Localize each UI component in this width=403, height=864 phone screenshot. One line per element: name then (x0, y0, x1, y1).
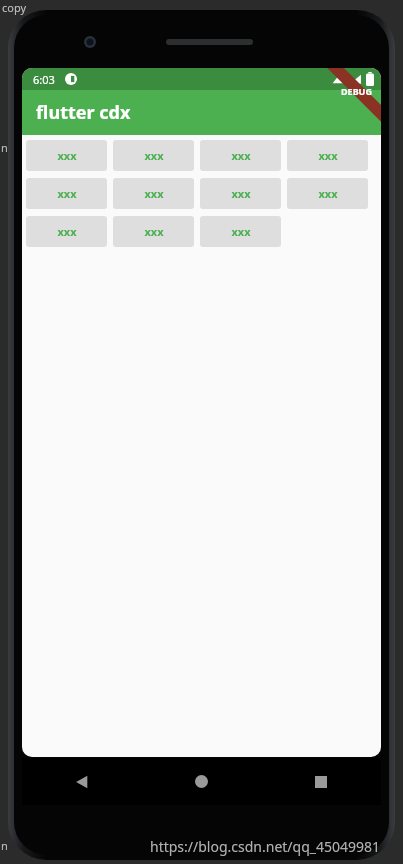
staticText: xxx (144, 224, 164, 239)
button[interactable]: xxx (287, 140, 368, 171)
staticText: n (1, 838, 8, 853)
staticText: flutter cdx (36, 100, 131, 125)
button[interactable]: Recent apps (261, 758, 381, 805)
staticText: xxx (57, 224, 77, 239)
staticText: xxx (144, 148, 164, 163)
staticText: xxx (231, 148, 251, 163)
button[interactable]: Home (141, 758, 261, 805)
button[interactable]: xxx (26, 140, 107, 171)
staticText: n (1, 140, 8, 155)
staticText: xxx (318, 148, 338, 163)
button[interactable]: xxx (113, 178, 194, 209)
button[interactable]: xxx (200, 216, 281, 247)
button[interactable]: xxx (26, 216, 107, 247)
staticText: xxx (231, 186, 251, 201)
button[interactable]: xxx (200, 178, 281, 209)
button[interactable]: Back (22, 758, 141, 805)
staticText: xxx (57, 186, 77, 201)
button[interactable]: xxx (113, 216, 194, 247)
staticText: xxx (231, 224, 251, 239)
staticText: xxx (57, 148, 77, 163)
staticText: copy (2, 0, 27, 15)
staticText: DEBUG (341, 85, 372, 97)
staticText: https://blog.csdn.net/qq_45049981 (150, 837, 381, 856)
button[interactable]: xxx (26, 178, 107, 209)
button[interactable]: xxx (287, 178, 368, 209)
button[interactable]: xxx (200, 140, 281, 171)
staticText: 6:03 (33, 72, 55, 87)
staticText: xxx (318, 186, 338, 201)
button[interactable]: xxx (113, 140, 194, 171)
staticText: xxx (144, 186, 164, 201)
